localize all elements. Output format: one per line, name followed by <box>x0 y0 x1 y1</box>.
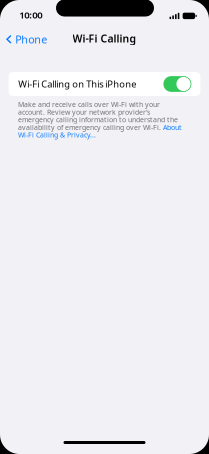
staticText: Phone <box>15 32 47 46</box>
button[interactable]: Make and receive calls over Wi-Fi with y… <box>18 100 186 139</box>
staticText: 10:00 <box>19 8 42 21</box>
staticText: Make and receive calls over Wi-Fi with y… <box>18 100 182 139</box>
button[interactable]: Wi-Fi Calling on This iPhone <box>9 72 200 96</box>
button[interactable]: Phone <box>0 27 54 51</box>
staticText: Wi-Fi Calling <box>72 31 136 45</box>
staticText: Wi-Fi Calling on This iPhone <box>18 78 136 90</box>
